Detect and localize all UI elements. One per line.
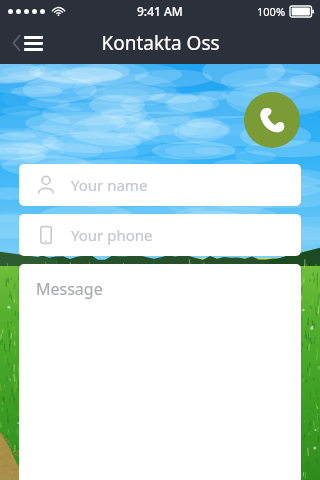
button[interactable]: Your name — [19, 164, 301, 206]
button[interactable]: Menu — [9, 31, 47, 55]
staticText: Your name — [71, 175, 148, 195]
staticText: 9:41 AM — [137, 3, 183, 19]
button[interactable]: Call — [244, 92, 300, 148]
staticText: Kontakta Oss — [101, 30, 220, 56]
staticText: 100% — [257, 4, 286, 19]
staticText: Your phone — [71, 225, 153, 245]
button[interactable]: Message — [19, 264, 301, 480]
button[interactable]: Your phone — [19, 214, 301, 256]
staticText: Message — [36, 278, 103, 300]
